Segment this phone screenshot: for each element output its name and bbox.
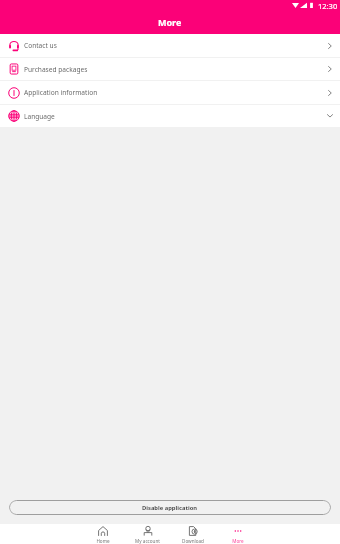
button[interactable]: More: [215, 524, 260, 544]
button[interactable]: Home: [80, 524, 125, 544]
staticText: 12:30: [318, 1, 338, 11]
staticText: My account: [135, 538, 160, 544]
staticText: Contact us: [24, 41, 57, 50]
staticText: Download: [182, 538, 204, 544]
staticText: More: [158, 16, 182, 28]
button[interactable]: My account: [125, 524, 170, 544]
button[interactable]: Application information: [0, 81, 340, 104]
staticText: Language: [24, 112, 55, 121]
button[interactable]: Language: [0, 105, 340, 127]
staticText: Purchased packages: [24, 65, 88, 74]
button[interactable]: Contact us: [0, 34, 340, 57]
staticText: More: [232, 538, 244, 544]
staticText: Application information: [24, 88, 98, 97]
staticText: Disable application: [142, 504, 198, 512]
button[interactable]: Purchased packages: [0, 58, 340, 80]
button[interactable]: Disable application: [9, 500, 331, 515]
staticText: Home: [96, 538, 110, 544]
button[interactable]: Download: [170, 524, 215, 544]
